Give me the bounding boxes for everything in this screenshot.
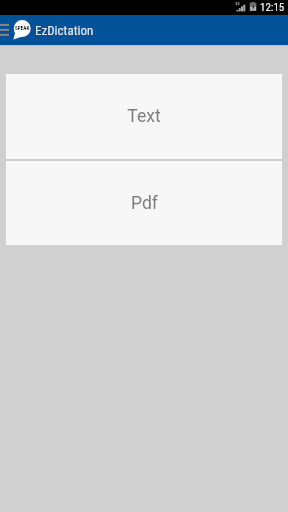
staticText: EzDictation bbox=[35, 23, 94, 38]
button[interactable]: Pdf bbox=[6, 161, 282, 245]
staticText: Text bbox=[127, 106, 161, 127]
staticText: Pdf bbox=[131, 193, 158, 214]
button[interactable]: Open navigation drawer bbox=[0, 15, 33, 45]
staticText: 12:15 bbox=[260, 1, 285, 14]
staticText: SPEAK bbox=[15, 25, 30, 31]
button[interactable]: Text bbox=[6, 74, 282, 159]
